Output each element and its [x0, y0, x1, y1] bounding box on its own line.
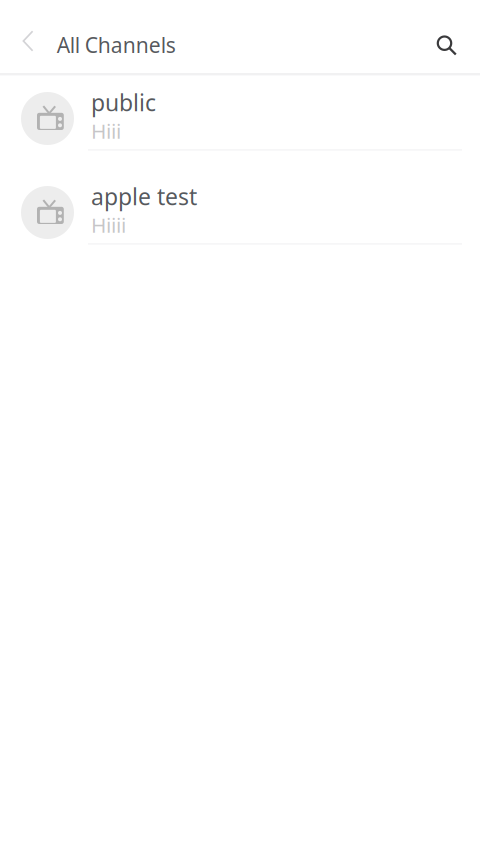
staticText: Hiiii [91, 210, 126, 239]
button[interactable]: Search [430, 0, 480, 73]
button[interactable]: apple test [0, 169, 480, 263]
staticText: Hiii [91, 116, 121, 145]
staticText: public [91, 87, 156, 118]
button[interactable]: Back [0, 0, 46, 73]
staticText: apple test [91, 181, 197, 212]
button[interactable]: public [0, 75, 480, 169]
staticText: All Channels [57, 30, 176, 59]
